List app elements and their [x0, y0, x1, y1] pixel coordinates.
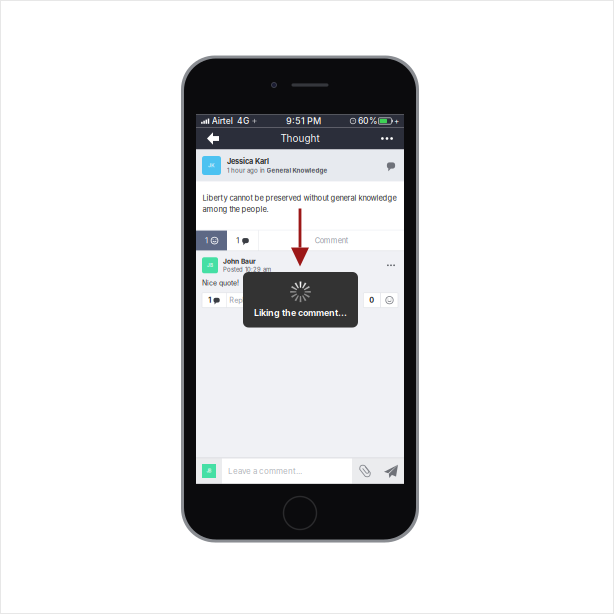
button[interactable]: 0 — [363, 293, 380, 308]
staticText: JK — [208, 162, 215, 168]
staticText: 0 — [369, 296, 374, 304]
button[interactable]: Back — [199, 127, 227, 149]
staticText: 9:51 PM — [286, 115, 321, 126]
staticText: 1 — [208, 296, 211, 304]
staticText: 1 hour ago in — [227, 167, 265, 174]
button[interactable]: Leave a comment... — [222, 458, 352, 483]
staticText: Leave a comment... — [228, 466, 302, 476]
staticText: Jessica Karl — [227, 157, 269, 166]
button[interactable]: More options — [373, 127, 401, 149]
button[interactable]: Send — [378, 458, 404, 483]
staticText: Airtel — [212, 116, 233, 126]
staticText: JB — [206, 468, 211, 474]
staticText: Liking the comment… — [254, 307, 347, 318]
button[interactable]: 1 — [202, 293, 226, 308]
staticText: 4G — [237, 116, 249, 126]
button[interactable]: Comment — [259, 231, 404, 251]
button[interactable]: Comments — [383, 157, 399, 173]
button[interactable]: 1 — [227, 231, 258, 251]
button[interactable]: React — [381, 293, 398, 308]
staticText: JB — [207, 262, 213, 268]
staticText: among the people. — [202, 205, 268, 214]
staticText: Comment — [315, 236, 348, 245]
staticText: 60% — [358, 116, 377, 126]
staticText: Thought — [280, 132, 319, 144]
staticText: Nice quote! — [202, 279, 239, 287]
staticText: John Baur — [223, 257, 256, 265]
button[interactable]: Comment options — [384, 259, 398, 271]
button[interactable]: 1 — [196, 231, 227, 251]
staticText: Liberty cannot be preserved without gene… — [202, 193, 396, 203]
button[interactable]: Reply — [227, 293, 251, 308]
staticText: 1 — [236, 236, 239, 245]
staticText: 1 — [205, 236, 208, 245]
staticText: General Knowledge — [267, 167, 328, 174]
staticText: + — [394, 116, 399, 126]
staticText: Reply — [229, 296, 248, 304]
button[interactable]: Attach file — [352, 458, 378, 483]
staticText: Posted 10:29 am — [223, 266, 271, 273]
